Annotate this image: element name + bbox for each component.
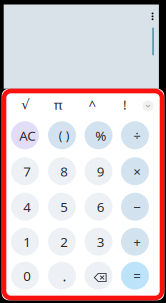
button[interactable] xyxy=(84,262,112,290)
staticText: 9 xyxy=(97,162,105,180)
button[interactable]: π xyxy=(45,97,71,114)
button[interactable]: 5 xyxy=(48,193,76,221)
button[interactable]: 4 xyxy=(11,193,39,221)
staticText: ! xyxy=(123,96,127,113)
staticText: × xyxy=(133,162,141,180)
staticText: √ xyxy=(21,97,29,112)
button[interactable]: × xyxy=(121,157,149,185)
staticText: 0 xyxy=(23,267,31,285)
staticText: 2 xyxy=(60,233,68,251)
button[interactable]: . xyxy=(48,262,76,290)
staticText: ( ) xyxy=(59,127,70,143)
button[interactable]: ÷ xyxy=(121,121,149,149)
staticText: 3 xyxy=(97,233,105,251)
staticText: 8 xyxy=(60,162,68,180)
button[interactable]: AC xyxy=(11,121,39,149)
button[interactable]: 0 xyxy=(11,262,39,290)
staticText: + xyxy=(133,233,141,251)
staticText: = xyxy=(133,267,141,285)
button[interactable]: ^ xyxy=(79,97,105,114)
button[interactable]: 7 xyxy=(11,157,39,185)
button[interactable]: ( ) xyxy=(48,121,76,149)
button[interactable]: 9 xyxy=(84,157,112,185)
button[interactable]: 2 xyxy=(48,228,76,256)
staticText: − xyxy=(133,198,141,216)
button[interactable]: 6 xyxy=(84,193,112,221)
staticText: 6 xyxy=(97,198,105,216)
staticText: . xyxy=(63,266,67,286)
staticText: 7 xyxy=(23,162,31,180)
staticText: π xyxy=(54,96,63,113)
staticText: ÷ xyxy=(133,127,141,144)
button[interactable]: Collapse keypad xyxy=(142,100,154,112)
button[interactable]: = xyxy=(121,262,149,290)
button[interactable]: 8 xyxy=(48,157,76,185)
staticText: ^ xyxy=(88,96,96,113)
button[interactable]: % xyxy=(84,121,112,149)
button[interactable]: ! xyxy=(112,97,138,114)
staticText: AC xyxy=(19,127,35,144)
staticText: % xyxy=(95,127,106,144)
button[interactable]: 3 xyxy=(84,228,112,256)
button[interactable]: √ xyxy=(12,97,38,114)
button[interactable]: − xyxy=(121,193,149,221)
button[interactable]: 1 xyxy=(11,228,39,256)
staticText: 5 xyxy=(60,198,68,216)
staticText: 4 xyxy=(23,198,31,216)
button[interactable]: + xyxy=(121,228,149,256)
staticText: 1 xyxy=(23,233,31,251)
